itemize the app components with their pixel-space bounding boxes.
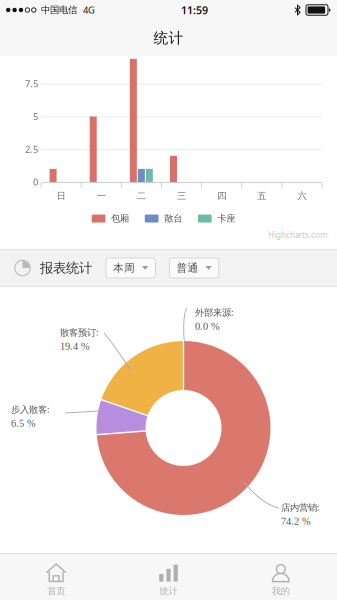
staticText: 卡座	[217, 213, 235, 224]
staticText: 0	[33, 176, 38, 188]
staticText: 一	[97, 190, 106, 202]
staticText: 店内营销:	[281, 501, 320, 513]
button[interactable]: 统计	[112, 553, 225, 600]
staticText: 中国电信	[41, 4, 77, 16]
staticText: 六	[297, 190, 306, 202]
staticText: 11:59	[181, 3, 208, 17]
staticText: 散台	[164, 213, 182, 224]
button[interactable]: 本周	[106, 258, 155, 278]
staticText: 普通	[176, 261, 198, 274]
staticText: 首页	[47, 585, 65, 597]
button[interactable]: 我的	[225, 553, 337, 600]
staticText: 我的	[272, 585, 290, 597]
staticText: 外部来源:	[195, 306, 234, 318]
staticText: 四	[217, 190, 226, 202]
staticText: 报表统计	[40, 260, 92, 276]
staticText: 散客预订:	[60, 326, 99, 338]
staticText: 19.4 %	[60, 340, 90, 352]
staticText: 步入散客:	[11, 403, 50, 415]
staticText: 五	[257, 190, 266, 202]
button[interactable]: 首页	[0, 553, 112, 600]
staticText: 统计	[153, 29, 183, 47]
staticText: 7.5	[25, 78, 38, 90]
staticText: 6.5 %	[11, 417, 36, 429]
button[interactable]: 普通	[169, 258, 219, 278]
staticText: 统计	[159, 585, 177, 597]
staticText: 5	[33, 110, 38, 123]
staticText: 包厢	[111, 213, 129, 224]
staticText: 0.0 %	[195, 320, 220, 332]
staticText: 二	[137, 190, 146, 202]
staticText: Highcharts.com	[268, 230, 327, 240]
staticText: 本周	[113, 261, 135, 274]
staticText: 三	[177, 190, 186, 202]
staticText: 4G	[83, 4, 95, 16]
staticText: 日	[57, 190, 66, 202]
staticText: 74.2 %	[281, 515, 311, 527]
staticText: 2.5	[25, 143, 38, 155]
